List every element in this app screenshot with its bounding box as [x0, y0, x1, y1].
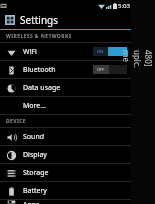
staticText: Settings: [20, 13, 59, 27]
button[interactable]: Storage: [0, 164, 131, 181]
button[interactable]: Apps: [0, 200, 131, 204]
button[interactable]: Settings: [0, 11, 131, 29]
button[interactable]: Sound: [0, 128, 131, 145]
staticText: Storage: [23, 168, 49, 178]
staticText: DEVICE: [6, 118, 27, 125]
button[interactable]: Display: [0, 146, 131, 163]
staticText: ON: [97, 49, 104, 54]
staticText: 5:03: [118, 2, 130, 10]
staticText: Display: [23, 150, 47, 160]
staticText: Battery: [23, 186, 47, 196]
staticText: Apps: [23, 200, 40, 204]
staticText: Data usage: [23, 83, 61, 93]
button[interactable]: Data usage: [0, 79, 131, 96]
button[interactable]: Battery: [0, 182, 131, 199]
button[interactable]: Toggle off: [93, 65, 127, 74]
staticText: WiFi: [23, 47, 37, 57]
button[interactable]: Bluetooth: [0, 61, 131, 78]
staticText: More...: [23, 101, 46, 111]
staticText: Bluetooth: [23, 65, 56, 75]
button[interactable]: WiFi: [0, 43, 131, 60]
staticText: OFF: [97, 67, 105, 72]
staticText: Sound: [23, 132, 45, 142]
button[interactable]: Toggle on: [93, 47, 127, 56]
button[interactable]: More...: [0, 97, 131, 114]
staticText: [320x480] uplc.me: [121, 50, 155, 74]
staticText: WIRELESS & NETWORKS: [6, 33, 72, 40]
